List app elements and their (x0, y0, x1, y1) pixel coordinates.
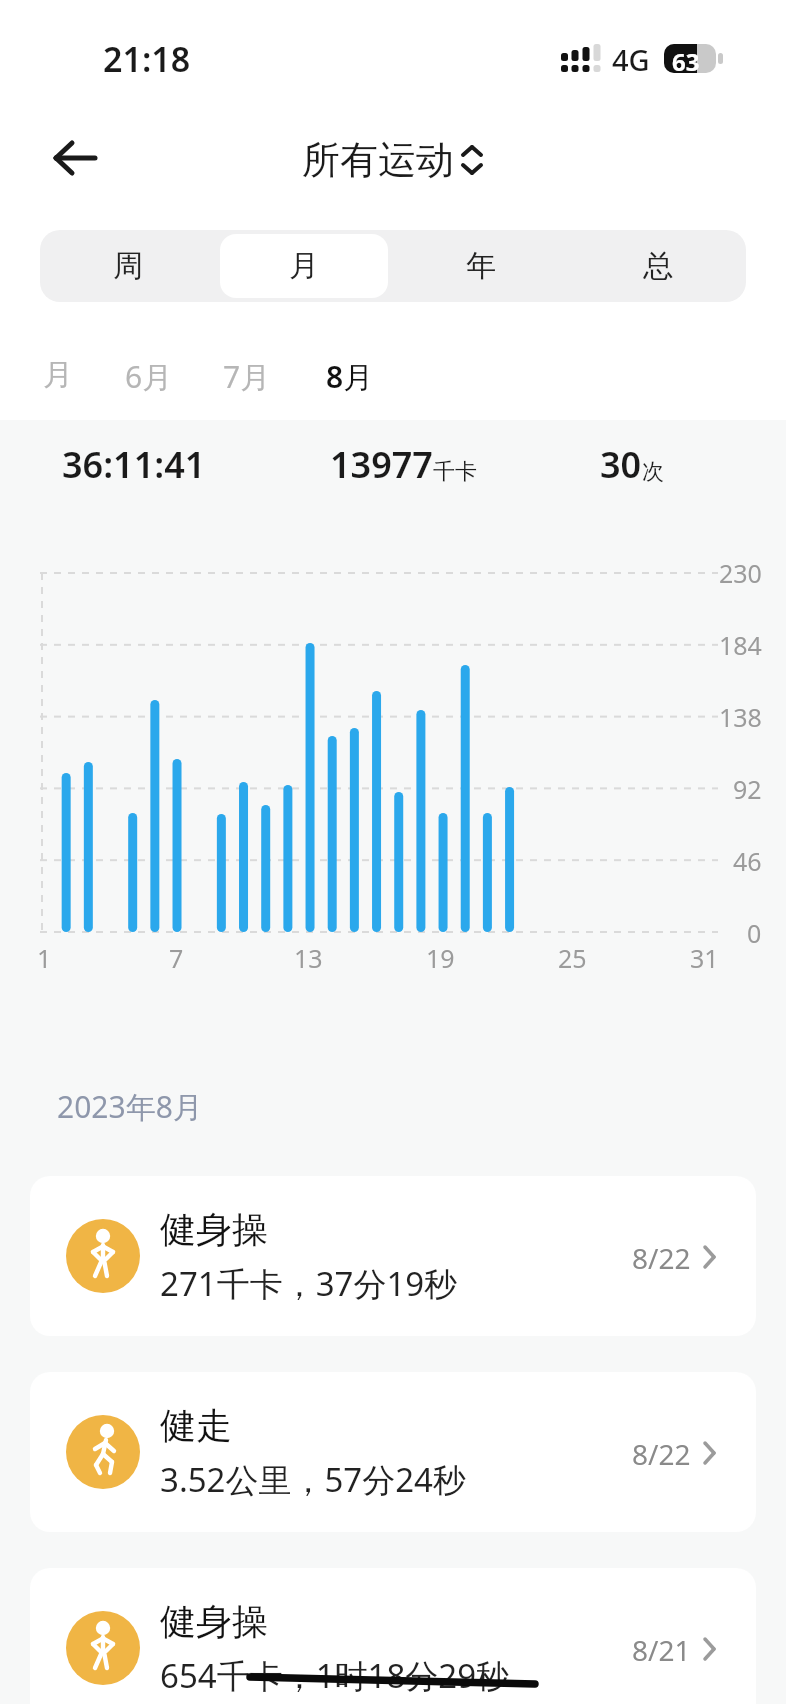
staticText: 周 (113, 247, 143, 285)
staticText: 次 (642, 458, 664, 486)
staticText: 21:18 (103, 36, 191, 82)
button[interactable]: 年 (396, 234, 565, 298)
staticText: 总 (643, 247, 673, 285)
staticText: 千卡 (433, 458, 477, 486)
staticText: 30 (600, 440, 642, 489)
staticText: 654千卡，1时18分29秒 (160, 1653, 510, 1698)
button[interactable]: 健走 (30, 1372, 756, 1532)
button[interactable] (40, 125, 110, 191)
staticText: 所有运动 (302, 136, 454, 184)
staticText: 184 (719, 628, 762, 662)
staticText: 8/22 (632, 1239, 691, 1277)
staticText: 0 (747, 916, 762, 950)
button[interactable]: 健身操 (30, 1176, 756, 1336)
staticText: 年 (466, 247, 496, 285)
staticText: 健走 (160, 1403, 232, 1448)
staticText: 8/21 (632, 1631, 691, 1669)
staticText: 1 (37, 941, 52, 975)
button[interactable]: 所有运动 (302, 136, 484, 184)
staticText: 月 (289, 247, 319, 285)
staticText: 230 (719, 556, 762, 590)
staticText: 31 (690, 941, 719, 975)
staticText: 13 (294, 941, 323, 975)
staticText: 138 (719, 700, 762, 734)
staticText: 46 (733, 844, 762, 878)
staticText: 36:11:41 (62, 440, 206, 489)
button[interactable]: 月 (220, 234, 388, 298)
staticText: 健身操 (160, 1207, 268, 1252)
staticText: 健身操 (160, 1599, 268, 1644)
staticText: 19 (426, 941, 455, 975)
staticText: 3.52公里，57分24秒 (160, 1457, 466, 1502)
staticText: 271千卡，37分19秒 (160, 1261, 458, 1306)
button[interactable]: 健身操 (30, 1568, 756, 1704)
button[interactable]: 总 (573, 234, 742, 298)
staticText: 8/22 (632, 1435, 691, 1473)
staticText: 2023年8月 (57, 1086, 203, 1127)
button[interactable]: 周 (44, 234, 212, 298)
staticText: 7 (169, 941, 184, 975)
staticText: 63 (672, 45, 700, 78)
staticText: 25 (558, 941, 587, 975)
staticText: 92 (733, 772, 762, 806)
staticText: 4G (612, 40, 650, 79)
staticText: 13977 (330, 440, 433, 489)
